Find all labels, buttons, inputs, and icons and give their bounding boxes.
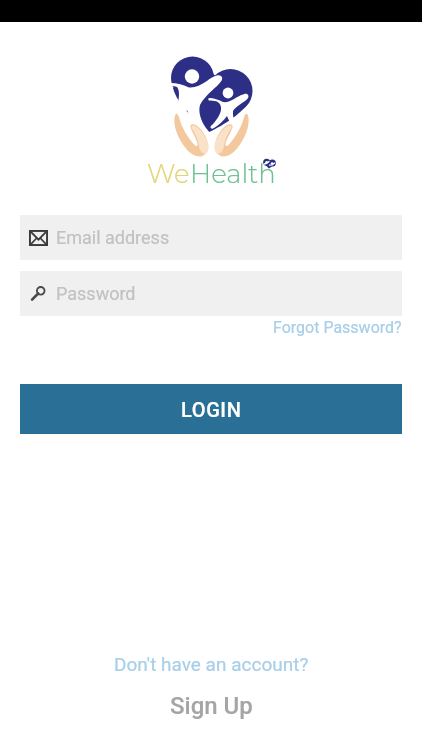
button[interactable]: Forgot Password?	[273, 318, 402, 337]
button[interactable]: Email address	[20, 215, 402, 260]
staticText: Health	[190, 158, 276, 190]
staticText: LOGIN	[181, 398, 242, 421]
staticText: Password	[56, 283, 136, 304]
button[interactable]: Sign Up	[170, 692, 253, 720]
staticText: Email address	[56, 227, 170, 248]
button[interactable]: LOGIN	[20, 384, 402, 434]
button[interactable]: Don't have an account?	[114, 653, 309, 675]
button[interactable]: Password	[20, 271, 402, 316]
staticText: We	[147, 158, 190, 190]
